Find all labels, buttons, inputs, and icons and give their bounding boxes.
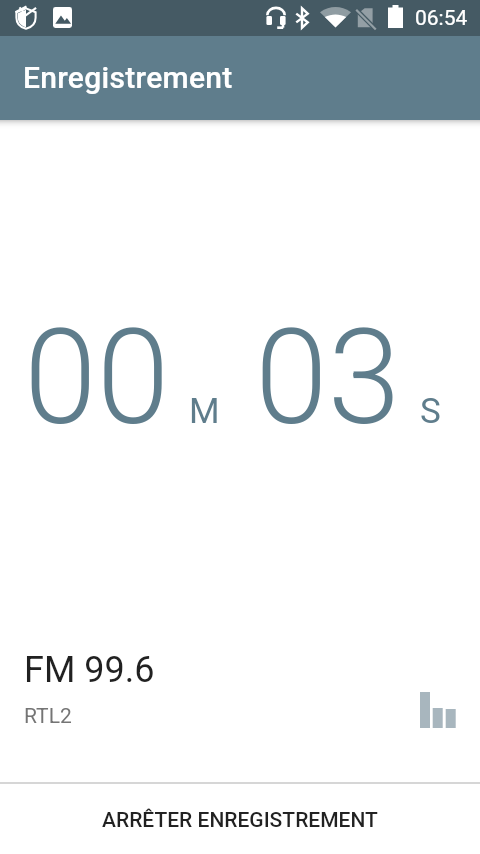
staticText: S [420,391,441,432]
button[interactable]: ARRÊTER ENREGISTREMENT [0,782,480,854]
staticText: 06:54 [415,6,468,31]
staticText: Enregistrement [23,60,233,95]
staticText: RTL2 [24,704,72,729]
other: Signal level [420,692,456,728]
staticText: M [189,391,220,432]
staticText: FM 99.6 [24,649,155,691]
staticText: 03 [255,301,401,455]
staticText: ARRÊTER ENREGISTREMENT [102,808,378,833]
staticText: 00 [24,301,170,455]
